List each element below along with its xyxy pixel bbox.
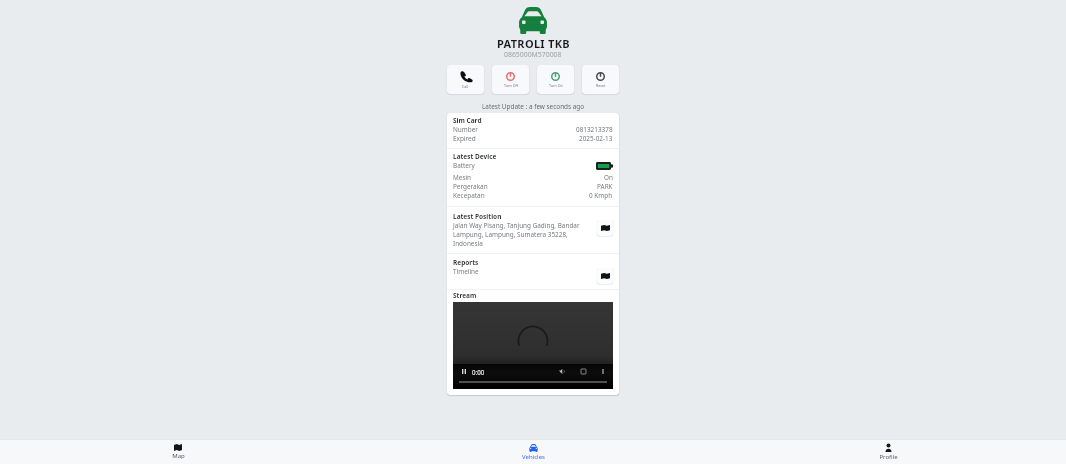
button[interactable]: Map [0, 440, 356, 464]
button[interactable]: Vehicles [356, 440, 711, 464]
button[interactable]: Profile [711, 440, 1066, 464]
staticText: 2025-02-13 [579, 134, 613, 143]
staticText: Profile [879, 453, 898, 461]
button[interactable]: Turn On [537, 65, 574, 94]
staticText: 0:00 [472, 368, 485, 376]
button[interactable]: Reset [582, 65, 619, 94]
staticText: Turn On [549, 83, 563, 88]
staticText: Battery [453, 161, 475, 170]
staticText: Expired [453, 134, 476, 143]
staticText: Number [453, 125, 478, 134]
staticText: 0 Kmph [589, 191, 613, 200]
staticText: Jalan Way Pisang, Tanjung Gading, Bandar… [453, 221, 580, 248]
staticText: Pergerakan [453, 182, 488, 191]
staticText: 0865000M570008 [504, 50, 562, 59]
button[interactable]: Open map [597, 220, 613, 236]
staticText: Stream [453, 291, 477, 300]
button[interactable]: More options [599, 366, 606, 377]
staticText: Vehicles [522, 453, 545, 461]
staticText: Timeline [453, 267, 479, 276]
staticText: Reset [596, 83, 606, 88]
staticText: Turn Off [504, 83, 518, 88]
staticText: Latest Update : a few seconds ago [482, 102, 585, 111]
staticText: Kecepatan [453, 191, 485, 200]
staticText: Latest Position [453, 212, 502, 221]
button[interactable]: Call [447, 65, 484, 94]
staticText: Mesin [453, 173, 472, 182]
button[interactable]: Pause [459, 366, 468, 377]
staticText: Call [462, 84, 469, 89]
staticText: Map [172, 452, 185, 460]
staticText: PARK [597, 182, 613, 191]
button[interactable]: Turn Off [492, 65, 529, 94]
staticText: Latest Device [453, 152, 497, 161]
button[interactable]: Mute [557, 366, 567, 377]
staticText: On [604, 173, 613, 182]
staticText: 0813213378 [576, 125, 613, 134]
staticText: Reports [453, 258, 479, 267]
button[interactable]: Fullscreen [578, 366, 588, 377]
staticText: Sim Card [453, 116, 482, 125]
button[interactable]: Open timeline [597, 268, 613, 284]
staticText: PATROLI TKB [497, 36, 570, 51]
